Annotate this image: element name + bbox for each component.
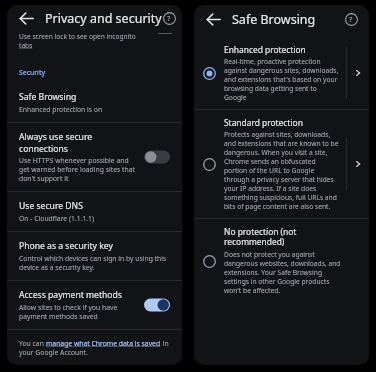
button[interactable]: Use screen lock to see open incognito (7, 31, 182, 56)
staticText: On - Cloudflare (1.1.1.1) (19, 214, 95, 223)
staticText: Enhanced protection (224, 44, 306, 55)
button[interactable]: Select option (198, 250, 220, 272)
button[interactable]: Use secure DNS (7, 192, 182, 231)
staticText: ? (349, 14, 353, 24)
button[interactable]: Help (339, 7, 363, 31)
staticText: Safe Browsing (232, 11, 316, 28)
staticText: in (161, 339, 169, 348)
staticText: Safe Browsing (19, 91, 77, 103)
button[interactable]: Phone as a security key (7, 232, 182, 280)
button[interactable]: More details (349, 155, 367, 173)
staticText: tabs (19, 41, 33, 50)
staticText: your Google Account. (19, 348, 88, 357)
button[interactable]: Select option (194, 37, 369, 109)
button[interactable]: Select option (194, 110, 369, 218)
button[interactable]: Help (162, 6, 176, 30)
staticText: Control which devices can sign in by usi… (19, 254, 172, 272)
staticText: Enhanced protection is on (19, 105, 103, 114)
staticText: Real-time, proactive protection against … (224, 57, 340, 102)
staticText: Protects against sites, downloads, and e… (224, 130, 340, 211)
button[interactable]: Safe Browsing (7, 91, 182, 122)
staticText: No protection (not recommended) (224, 226, 341, 248)
staticText: Use HTTPS whenever possible and get warn… (19, 156, 136, 183)
staticText: Always use secure connections (19, 131, 136, 154)
button[interactable]: Back (200, 6, 226, 32)
button[interactable]: Toggle off (140, 146, 174, 168)
staticText: Access payment methods (19, 289, 122, 301)
staticText: Privacy and security (45, 10, 162, 27)
button[interactable]: Back (13, 5, 39, 31)
staticText: Standard protection (224, 117, 303, 128)
button[interactable]: Select option (198, 153, 220, 175)
button[interactable]: Toggle on (140, 294, 174, 316)
staticText: Use screen lock to see open incognito (19, 32, 136, 41)
button[interactable]: More details (349, 64, 367, 82)
staticText: ? (167, 13, 171, 23)
staticText: Does not protect you against dangerous w… (224, 250, 341, 295)
button[interactable]: Access payment methods (7, 281, 182, 329)
button[interactable]: Select option (194, 219, 369, 302)
staticText: Allow sites to check if you have payment… (19, 303, 136, 321)
button[interactable]: Always use secure connections (7, 123, 182, 191)
button[interactable]: Select option (198, 62, 220, 84)
staticText: You can (19, 339, 46, 348)
staticText: Use secure DNS (19, 200, 83, 212)
staticText: Phone as a security key (19, 240, 113, 252)
staticText: Security (19, 68, 46, 77)
button[interactable]: manage what Chrome data is saved (46, 339, 161, 348)
